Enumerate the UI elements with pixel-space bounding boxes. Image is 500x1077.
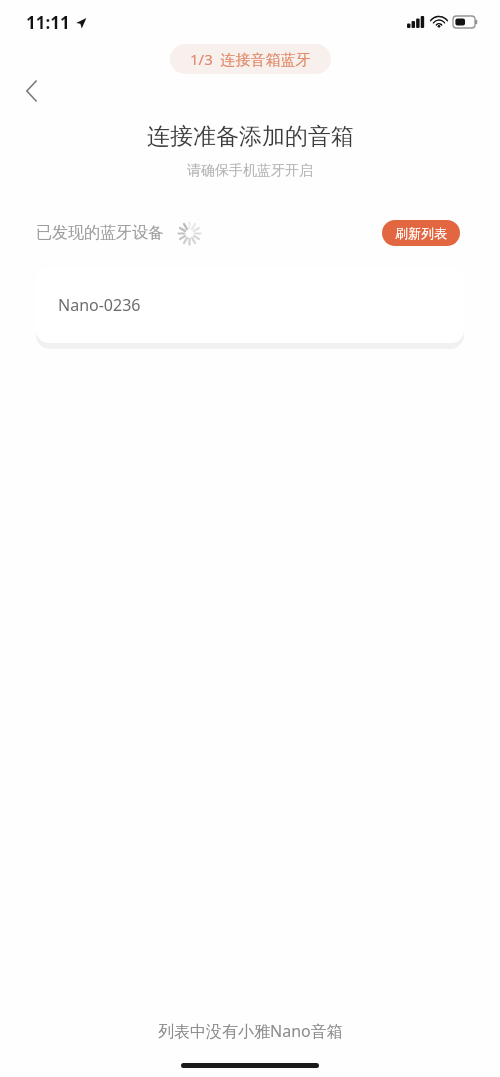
staticText: 1/3 连接音箱蓝牙	[190, 49, 311, 69]
staticText: 请确保手机蓝牙开启	[187, 162, 313, 180]
button[interactable]: Back	[14, 74, 48, 108]
staticText: 11:11	[26, 11, 70, 34]
staticText: 刷新列表	[395, 225, 447, 241]
button[interactable]: 列表中没有小雅Nano音箱	[148, 1016, 353, 1046]
staticText: 连接准备添加的音箱	[147, 122, 354, 151]
staticText: 列表中没有小雅Nano音箱	[158, 1020, 343, 1042]
staticText: 已发现的蓝牙设备	[36, 223, 164, 243]
staticText: Nano-0236	[58, 294, 141, 316]
button[interactable]: 1/3 连接音箱蓝牙	[170, 44, 331, 74]
button[interactable]: Nano-0236	[36, 267, 464, 343]
button[interactable]: 刷新列表	[382, 220, 460, 246]
